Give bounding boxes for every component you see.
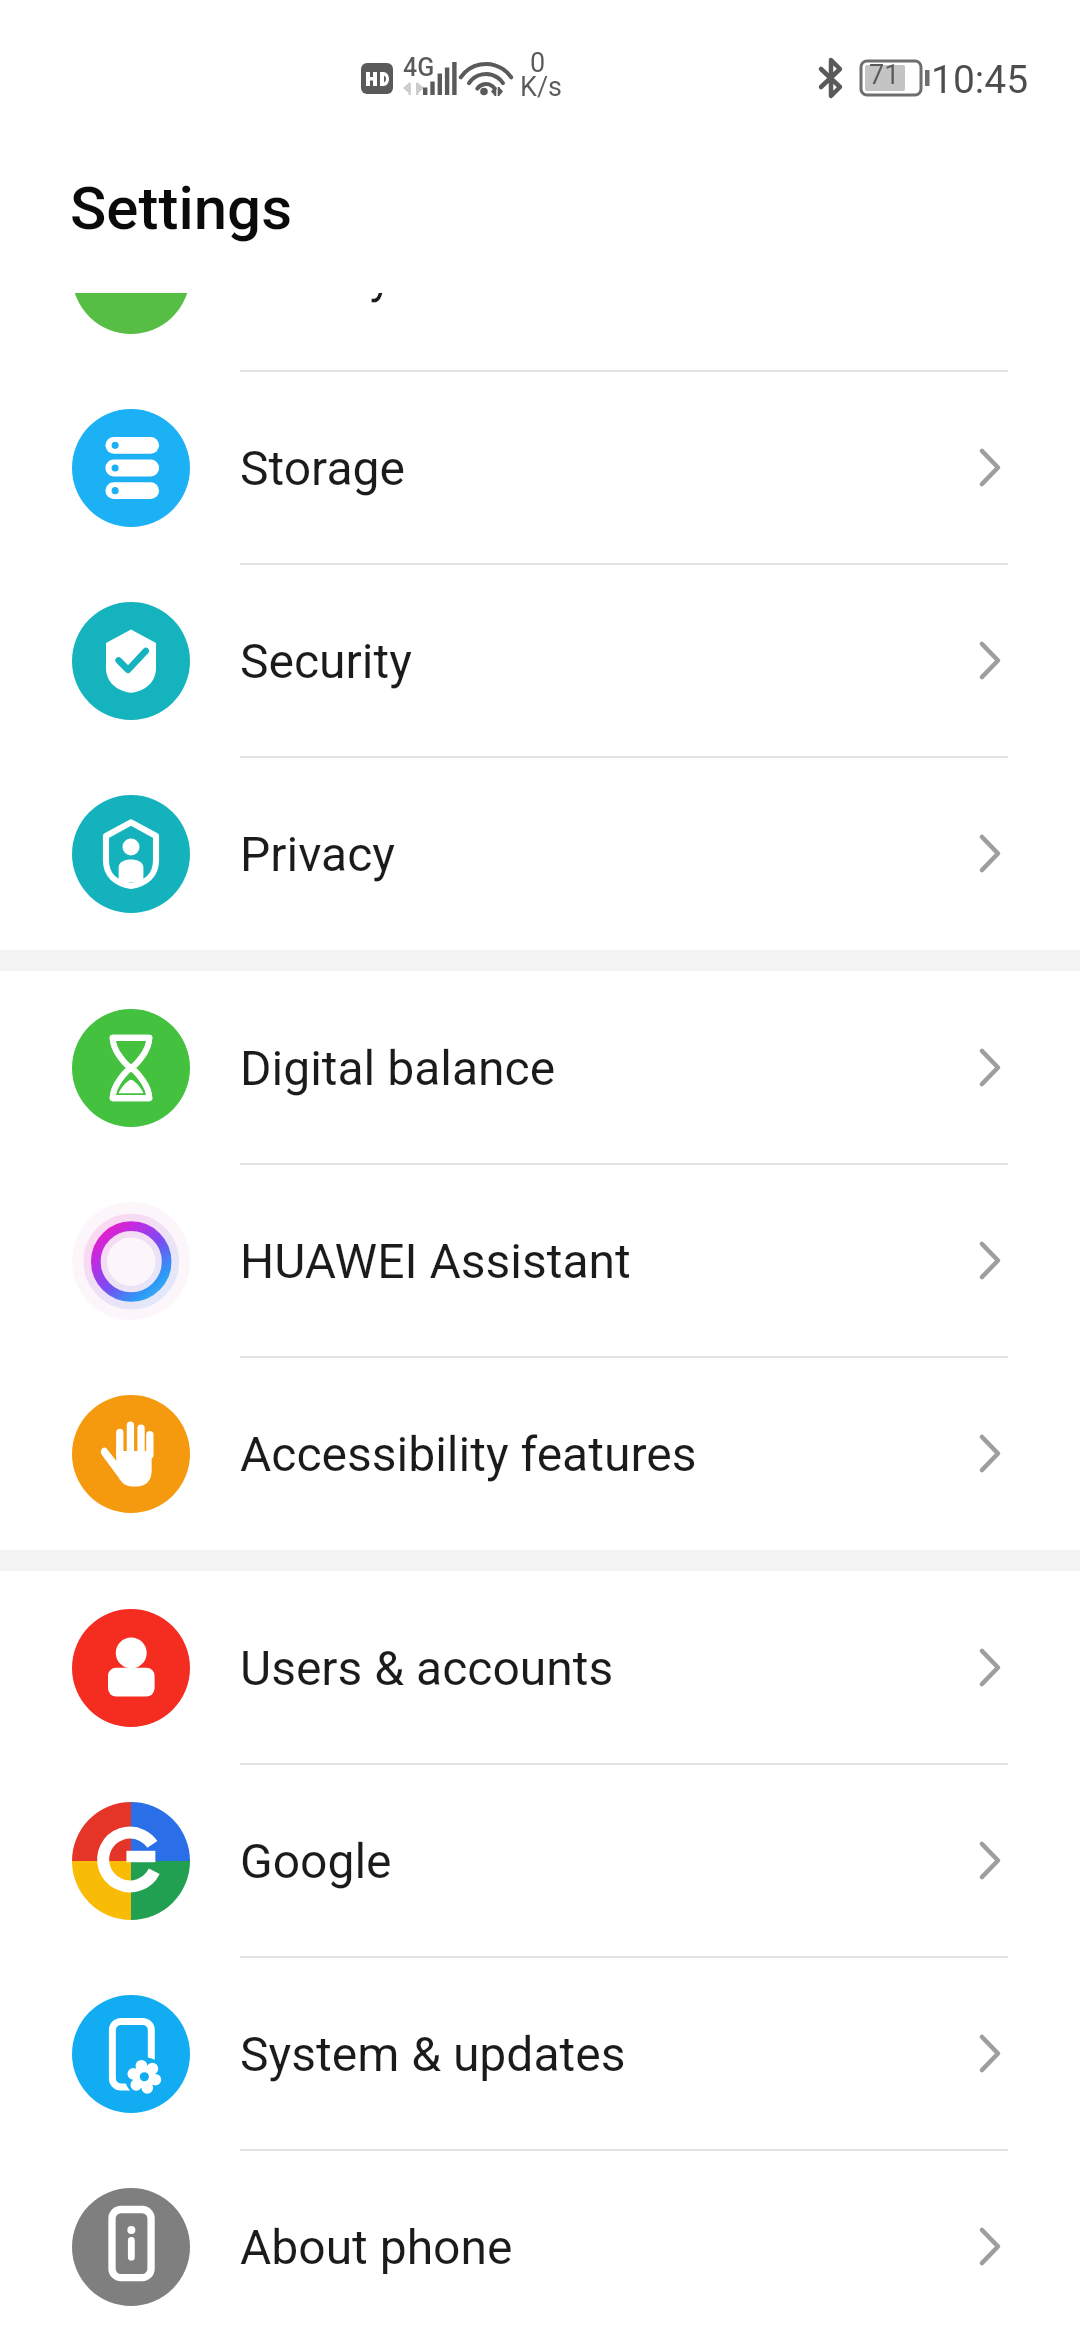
button[interactable]: Google	[0, 1764, 1080, 1957]
staticText: Storage	[240, 440, 405, 496]
staticText: 4G	[403, 53, 435, 82]
button[interactable]: Users & accounts	[0, 1571, 1080, 1764]
staticText: Security	[240, 633, 412, 689]
button[interactable]: Storage	[0, 371, 1080, 564]
button[interactable]: HUAWEI Assistant	[0, 1164, 1080, 1357]
staticText: System & updates	[240, 2026, 626, 2082]
staticText: 10:45	[931, 57, 1029, 103]
staticText: HUAWEI Assistant	[240, 1233, 631, 1289]
staticText: Privacy	[240, 826, 396, 882]
staticText: Digital balance	[240, 1040, 556, 1096]
button[interactable]: Digital balance	[0, 971, 1080, 1164]
staticText: Accessibility features	[240, 1426, 697, 1482]
button[interactable]: System & updates	[0, 1957, 1080, 2150]
staticText: Google	[240, 1833, 392, 1889]
button[interactable]: Privacy	[0, 757, 1080, 950]
staticText: Battery	[240, 293, 393, 303]
staticText: Settings	[70, 173, 293, 243]
button[interactable]: Accessibility features	[0, 1357, 1080, 1550]
staticText: Users & accounts	[240, 1640, 614, 1696]
button[interactable]: Battery	[0, 293, 1080, 371]
staticText: K/s	[520, 71, 563, 103]
staticText: About phone	[240, 2219, 513, 2275]
staticText: 0	[530, 47, 546, 79]
button[interactable]: Security	[0, 564, 1080, 757]
button[interactable]: About phone	[0, 2150, 1080, 2340]
staticText: 71	[869, 59, 900, 91]
